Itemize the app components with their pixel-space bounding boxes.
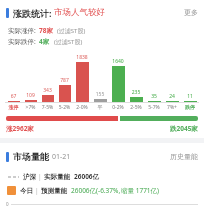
staticText: 26006亿	[74, 172, 100, 181]
staticText: 0-2%	[109, 104, 127, 111]
staticText: 1838	[73, 54, 91, 61]
staticText: 沪深	[23, 173, 36, 181]
button[interactable]: 沪深实际量能图例	[8, 172, 204, 181]
staticText: 343	[39, 87, 56, 94]
staticText: |	[35, 186, 39, 195]
staticText: 涨停	[5, 104, 22, 110]
staticText: |	[38, 172, 42, 181]
staticText: 7%+	[163, 104, 181, 111]
staticText: 01-21	[52, 152, 71, 162]
staticText: 155	[91, 91, 109, 98]
staticText: 跌2045家	[170, 124, 198, 133]
button[interactable]: 历史量能	[170, 152, 198, 161]
other: 沪深实际量能图例	[8, 173, 19, 181]
staticText: 涨跌统计:	[13, 7, 52, 19]
staticText: 市场量能	[13, 151, 49, 162]
staticText: (过滤ST股)	[54, 38, 83, 46]
staticText: 5-2%	[56, 104, 73, 111]
staticText: 35	[145, 93, 163, 100]
staticText: 1771亿)	[134, 186, 160, 195]
staticText: 市场人气较好	[54, 7, 105, 18]
staticText: 平	[91, 104, 109, 110]
staticText: 实际跌停:	[8, 37, 36, 46]
staticText: 5-7%	[145, 104, 163, 111]
staticText: 24	[163, 93, 181, 100]
other: 今日预测量能图例	[7, 186, 16, 195]
staticText: 235	[127, 89, 145, 96]
button[interactable]: 今日预测量能图例	[7, 186, 204, 195]
staticText: 更多	[184, 8, 198, 17]
staticText: 2-0%	[73, 104, 91, 111]
staticText: (过滤ST股)	[57, 27, 86, 35]
staticText: 今日	[20, 187, 33, 195]
staticText: 78家	[39, 26, 53, 35]
staticText: 2-5%	[127, 104, 145, 111]
staticText: 实际涨停:	[8, 26, 36, 35]
button[interactable]: 更多	[184, 8, 198, 17]
staticText: 缩量	[121, 187, 134, 195]
staticText: 历史量能	[170, 152, 198, 161]
button[interactable]	[6, 116, 198, 121]
staticText: 7-5%	[39, 104, 56, 111]
staticText: 实际量能	[44, 173, 70, 181]
staticText: 1640	[109, 58, 127, 65]
staticText: 11	[181, 93, 199, 100]
staticText: 跌停	[181, 104, 199, 110]
staticText: 预测量能	[41, 187, 67, 195]
staticText: >7%	[22, 104, 39, 111]
staticText: 涨2962家	[6, 124, 34, 133]
staticText: 4家	[39, 37, 50, 46]
staticText: 787	[56, 77, 73, 84]
staticText: 67	[5, 93, 22, 100]
staticText: 26006亿(-6.37%,	[71, 186, 121, 195]
staticText: 0	[6, 201, 9, 207]
staticText: 109	[22, 92, 39, 99]
